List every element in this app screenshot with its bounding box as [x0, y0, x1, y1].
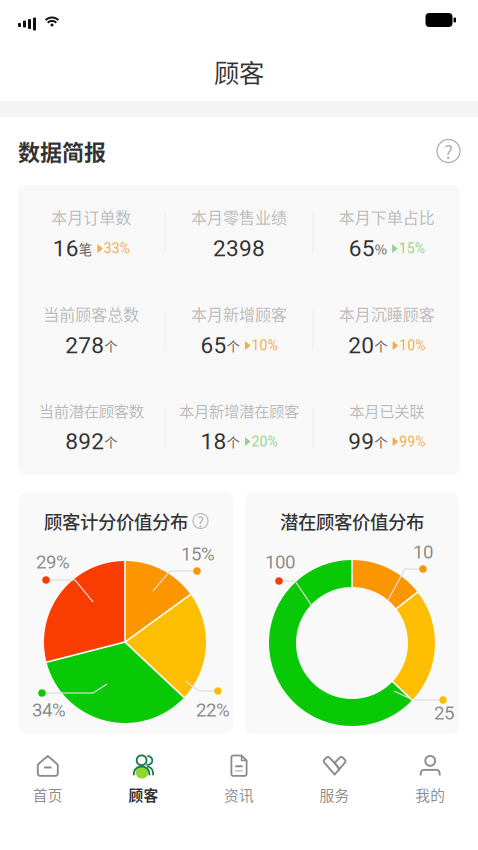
- staticText: 本月新增潜在顾客: [179, 399, 299, 421]
- staticText: 100: [265, 551, 295, 573]
- button[interactable]: 帮助: [437, 139, 460, 162]
- staticText: 顾客: [214, 53, 264, 90]
- staticText: 25: [434, 702, 454, 724]
- staticText: 本月订单数: [51, 205, 131, 228]
- staticText: 892: [65, 428, 104, 455]
- staticText: 个: [104, 432, 117, 451]
- staticText: 服务: [320, 784, 350, 805]
- staticText: 个: [374, 336, 387, 355]
- staticText: 顾客: [128, 784, 158, 805]
- staticText: 20: [348, 332, 374, 359]
- staticText: 65: [349, 235, 375, 262]
- staticText: 个: [226, 432, 239, 451]
- staticText: 278: [65, 332, 104, 359]
- staticText: 15%: [399, 240, 425, 257]
- button[interactable]: 我的: [382, 742, 478, 808]
- staticText: 2398: [213, 235, 265, 262]
- staticText: 99: [348, 428, 374, 455]
- staticText: 65: [200, 332, 226, 359]
- staticText: 潜在顾客价值分布: [280, 508, 424, 534]
- staticText: 数据简报: [18, 135, 106, 167]
- staticText: 本月沉睡顾客: [339, 302, 435, 325]
- staticText: 当前潜在顾客数: [39, 399, 144, 421]
- staticText: ?: [197, 510, 204, 532]
- staticText: 本月新增顾客: [191, 302, 287, 325]
- staticText: 99%: [399, 433, 425, 450]
- button[interactable]: 资讯: [191, 742, 287, 808]
- staticText: 本月已关联: [349, 399, 424, 421]
- staticText: 16: [53, 235, 79, 262]
- staticText: 资讯: [224, 784, 254, 805]
- staticText: 顾客计分价值分布: [44, 508, 188, 534]
- staticText: 20%: [251, 433, 277, 450]
- staticText: 29%: [36, 551, 70, 573]
- staticText: ?: [444, 137, 453, 164]
- staticText: 15%: [181, 543, 215, 565]
- staticText: 个: [226, 336, 239, 355]
- staticText: 本月下单占比: [339, 205, 435, 228]
- button[interactable]: 服务: [287, 742, 382, 808]
- staticText: 个: [104, 336, 117, 355]
- button[interactable]: 首页: [0, 742, 96, 808]
- staticText: 10%: [399, 337, 425, 354]
- staticText: 当前顾客总数: [43, 302, 139, 325]
- staticText: 10: [413, 541, 433, 563]
- staticText: 本月零售业绩: [191, 205, 287, 228]
- staticText: 个: [374, 432, 387, 451]
- staticText: 34%: [32, 699, 66, 721]
- staticText: 首页: [33, 784, 63, 805]
- staticText: 10%: [251, 337, 277, 354]
- staticText: 22%: [196, 699, 230, 721]
- staticText: 笔: [79, 239, 92, 258]
- button[interactable]: 顾客: [96, 742, 191, 808]
- staticText: %: [375, 239, 387, 258]
- staticText: 33%: [104, 240, 130, 257]
- staticText: 我的: [415, 784, 445, 805]
- staticText: 18: [200, 428, 226, 455]
